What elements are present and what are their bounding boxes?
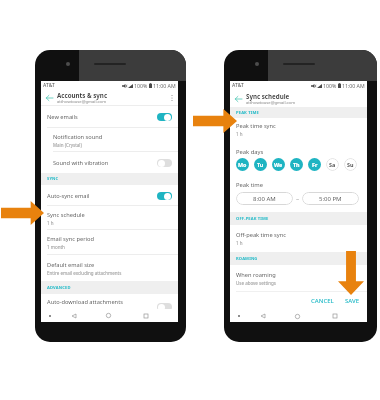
button[interactable]: Home — [292, 310, 303, 322]
button[interactable]: Su — [344, 158, 357, 171]
staticText: Default email size — [47, 261, 95, 269]
staticText: Th — [293, 161, 300, 168]
staticText: Mo — [238, 161, 247, 168]
button[interactable] — [157, 303, 172, 309]
staticText: 8:00 AM — [253, 195, 276, 203]
staticText: Peak time — [236, 181, 263, 189]
button[interactable]: Fr — [308, 158, 321, 171]
staticText: Sync schedule — [246, 92, 290, 100]
staticText: ADVANCED — [47, 285, 71, 291]
staticText: ROAMING — [236, 256, 258, 262]
staticText: When roaming — [236, 271, 276, 279]
staticText: Main (Crystal) — [53, 142, 82, 148]
staticText: AT&T — [43, 82, 55, 89]
button[interactable] — [157, 192, 172, 200]
button[interactable]: Auto-sync email — [41, 185, 178, 206]
button[interactable]: Email sync period — [41, 230, 178, 255]
staticText: Accounts & sync — [57, 91, 108, 99]
staticText: 100% — [323, 82, 337, 89]
button[interactable]: More options — [166, 90, 178, 106]
button[interactable] — [157, 159, 172, 167]
staticText: Sync schedule — [47, 211, 85, 219]
button[interactable]: Navigate up — [41, 90, 57, 106]
button[interactable]: Th — [290, 158, 303, 171]
staticText: atthowtouse@gmail.com — [57, 99, 107, 105]
staticText: Auto-sync email — [47, 192, 90, 200]
staticText: OFF-PEAK TIME — [236, 216, 269, 222]
button[interactable]: Home — [103, 309, 114, 322]
button[interactable]: Tu — [254, 158, 267, 171]
staticText: 11:00 AM — [342, 82, 365, 89]
button[interactable]: Sound with vibration — [41, 152, 178, 173]
staticText: Fr — [312, 161, 318, 168]
button[interactable]: Sa — [326, 158, 339, 171]
staticText: Peak days — [236, 148, 264, 156]
button[interactable]: Recent apps — [329, 310, 340, 322]
staticText: CANCEL — [311, 297, 334, 305]
button[interactable]: 5:00 PM — [302, 192, 359, 205]
button[interactable]: Default email size — [41, 255, 178, 281]
button[interactable]: 8:00 AM — [236, 192, 293, 205]
staticText: 1 h — [47, 220, 54, 226]
button[interactable]: Peak time sync — [230, 118, 367, 141]
button[interactable]: New emails — [41, 106, 178, 128]
staticText: Peak time sync — [236, 122, 276, 130]
staticText: New emails — [47, 113, 78, 121]
button[interactable]: Back — [257, 310, 268, 322]
staticText: Notification sound — [53, 133, 103, 141]
button[interactable]: Hide keyboard — [44, 309, 55, 322]
staticText: Tu — [257, 161, 264, 168]
staticText: Use above settings — [236, 280, 276, 286]
button[interactable]: Mo — [236, 158, 249, 171]
button[interactable]: Hide keyboard — [233, 310, 244, 322]
button[interactable]: SAVE — [342, 293, 363, 309]
button[interactable]: Off-peak time sync — [230, 225, 367, 252]
staticText: 1 month — [47, 244, 65, 250]
button[interactable]: When roaming — [230, 265, 367, 291]
button[interactable]: We — [272, 158, 285, 171]
button[interactable]: Notification sound — [41, 128, 178, 152]
button[interactable]: Navigate up — [230, 90, 246, 107]
staticText: Sound with vibration — [53, 159, 109, 167]
staticText: 1 h — [236, 131, 243, 137]
staticText: We — [274, 161, 283, 168]
button[interactable] — [157, 113, 172, 121]
staticText: Sa — [329, 161, 336, 168]
button[interactable]: CANCEL — [308, 293, 337, 309]
staticText: Email sync period — [47, 235, 94, 243]
staticText: Auto-download attachments — [47, 298, 157, 306]
button[interactable]: Sync schedule — [41, 206, 178, 230]
button[interactable]: Auto-download attachments — [41, 294, 178, 309]
staticText: Entire email excluding attachments — [47, 270, 122, 276]
staticText: 5:00 PM — [319, 195, 342, 203]
staticText: 11:00 AM — [153, 82, 176, 89]
staticText: Su — [347, 161, 354, 168]
staticText: Off-peak time sync — [236, 231, 286, 239]
staticText: PEAK TIME — [236, 110, 259, 116]
staticText: SYNC — [47, 176, 59, 182]
staticText: SAVE — [345, 297, 360, 305]
staticText: 1 h — [236, 240, 243, 246]
staticText: 100% — [134, 82, 148, 89]
staticText: atthowtouse@gmail.com — [246, 100, 296, 106]
staticText: AT&T — [232, 82, 244, 89]
staticText: ~ — [296, 195, 300, 202]
button[interactable]: Recent apps — [140, 309, 151, 322]
button[interactable]: Back — [68, 309, 79, 322]
